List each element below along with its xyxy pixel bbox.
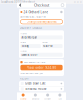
staticText: localhost:3000/checkout bbox=[1, 0, 35, 4]
button[interactable]: Orders bbox=[41, 92, 54, 100]
staticText: Tonkotsu House bbox=[25, 87, 46, 91]
staticText: DELIVERY DETAILS bbox=[19, 26, 41, 30]
staticText: Place order $24.80 bbox=[26, 66, 56, 70]
button[interactable]: Me bbox=[54, 92, 66, 100]
staticText: Change delivery address bbox=[26, 20, 56, 23]
button[interactable]: Help bbox=[61, 4, 64, 7]
staticText: Alex Morgan bbox=[21, 36, 37, 39]
staticText: Time bbox=[42, 40, 47, 44]
staticText: Today bbox=[21, 44, 28, 48]
staticText: 6:30 PM bbox=[43, 44, 52, 48]
button[interactable]: Back bbox=[19, 3, 22, 7]
staticText: Date bbox=[20, 40, 25, 44]
staticText: Notes bbox=[20, 49, 26, 52]
staticText: Save address for later bbox=[24, 61, 46, 64]
button[interactable]: Change delivery address bbox=[20, 19, 63, 24]
staticText: Browse bbox=[32, 97, 39, 100]
staticText: o o o bbox=[74, 0, 82, 4]
staticText: RECENT bbox=[19, 77, 28, 80]
button[interactable]: Green Bowl Cafe bbox=[19, 81, 64, 86]
staticText: Free delivery over $20 bbox=[20, 71, 42, 75]
staticText: Arrives 6:30 - 6:45 PM bbox=[20, 15, 45, 18]
staticText: Orders bbox=[44, 97, 51, 100]
staticText: Leave at door bbox=[21, 53, 37, 56]
button[interactable]: Browse bbox=[29, 92, 41, 100]
staticText: Me bbox=[58, 97, 61, 100]
staticText: Checkout bbox=[34, 3, 49, 7]
button[interactable]: Tonkotsu House bbox=[19, 86, 64, 91]
button[interactable]: Home bbox=[17, 92, 29, 100]
staticText: Name bbox=[20, 32, 26, 35]
staticText: Home bbox=[20, 97, 26, 100]
button[interactable]: Place order $24.80 bbox=[20, 65, 63, 70]
staticText: 24 Orchard Lane bbox=[23, 10, 48, 14]
staticText: Green Bowl Cafe bbox=[25, 82, 45, 85]
button[interactable]: Save address for later bbox=[20, 61, 63, 64]
